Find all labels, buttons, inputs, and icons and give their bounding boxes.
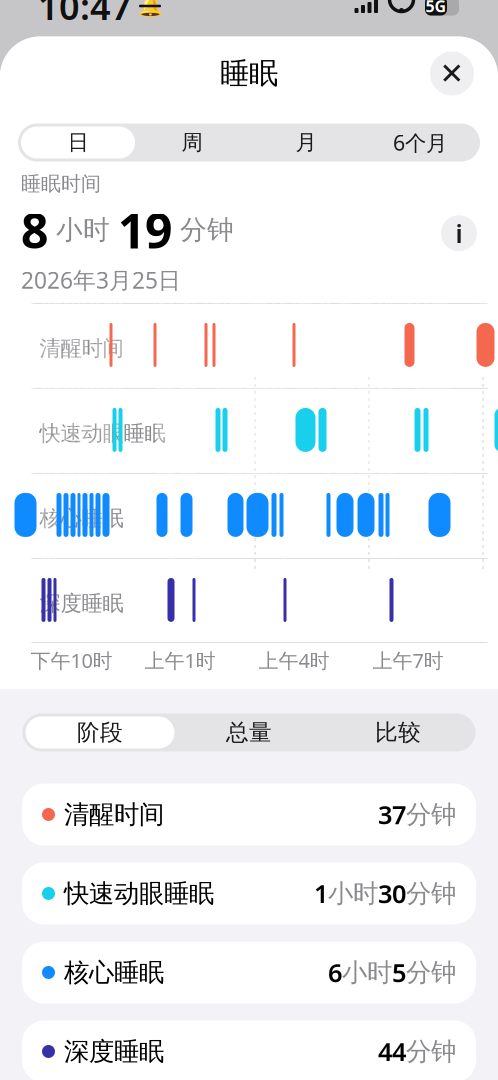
staticText: 分钟 bbox=[406, 878, 456, 909]
staticText: 19 bbox=[118, 198, 172, 262]
staticText: 清醒时间 bbox=[64, 799, 164, 830]
staticText: 分钟 bbox=[406, 1036, 456, 1067]
staticText: 深度睡眠 bbox=[64, 1036, 164, 1067]
staticText: 6 bbox=[328, 956, 342, 989]
button[interactable]: 日 bbox=[21, 126, 135, 158]
staticText: 下午10时 bbox=[30, 647, 112, 673]
staticText: 阶段 bbox=[77, 719, 123, 746]
staticText: 10:47 bbox=[38, 0, 132, 30]
staticText: 小时 bbox=[328, 878, 378, 909]
staticText: 睡眠 bbox=[220, 55, 278, 91]
staticText: 分钟 bbox=[406, 957, 456, 988]
staticText: 月 bbox=[295, 129, 316, 156]
staticText: 37 bbox=[378, 798, 406, 831]
staticText: 比较 bbox=[375, 719, 421, 746]
staticText: 分钟 bbox=[406, 799, 456, 830]
staticText: 1 bbox=[314, 877, 328, 910]
button[interactable]: 6个月 bbox=[363, 126, 477, 158]
staticText: 5G bbox=[425, 0, 446, 17]
staticText: 小时 bbox=[342, 957, 392, 988]
staticText: 上午1时 bbox=[144, 647, 215, 673]
staticText: 核心睡眠 bbox=[64, 957, 164, 988]
staticText: 核心睡眠 bbox=[39, 505, 123, 531]
staticText: 日 bbox=[67, 129, 88, 156]
button[interactable]: 阶段 bbox=[25, 716, 174, 748]
button[interactable]: 关闭 bbox=[430, 51, 474, 95]
staticText: 小时 bbox=[48, 214, 118, 246]
button[interactable]: 清醒时间 bbox=[22, 783, 476, 845]
staticText: 🔔 bbox=[137, 0, 162, 17]
button[interactable]: 月 bbox=[249, 126, 363, 158]
staticText: 深度睡眠 bbox=[39, 590, 123, 616]
staticText: 分钟 bbox=[172, 214, 234, 246]
staticText: 5 bbox=[392, 956, 406, 989]
staticText: 2026年3月25日 bbox=[21, 265, 181, 295]
staticText: 快速动眼睡眠 bbox=[64, 878, 214, 909]
button[interactable]: 核心睡眠 bbox=[22, 941, 476, 1003]
button[interactable]: 快速动眼睡眠 bbox=[22, 862, 476, 924]
staticText: 周 bbox=[181, 129, 202, 156]
button[interactable]: 比较 bbox=[323, 716, 472, 748]
button[interactable]: 总量 bbox=[174, 716, 323, 748]
staticText: 8 bbox=[21, 198, 48, 262]
button[interactable]: 深度睡眠 bbox=[22, 1020, 476, 1080]
staticText: 30 bbox=[378, 877, 406, 910]
button[interactable]: 周 bbox=[135, 126, 249, 158]
staticText: i bbox=[455, 216, 462, 250]
staticText: ✕ bbox=[439, 57, 464, 90]
staticText: 上午4时 bbox=[258, 647, 329, 673]
staticText: 清醒时间 bbox=[39, 335, 123, 361]
staticText: 44 bbox=[378, 1035, 406, 1068]
staticText: 总量 bbox=[226, 719, 272, 746]
staticText: 睡眠时间 bbox=[21, 171, 101, 196]
staticText: 6个月 bbox=[393, 128, 447, 157]
staticText: 上午7时 bbox=[372, 647, 443, 673]
button[interactable]: 信息 bbox=[441, 215, 477, 251]
staticText: 快速动眼睡眠 bbox=[39, 420, 165, 446]
